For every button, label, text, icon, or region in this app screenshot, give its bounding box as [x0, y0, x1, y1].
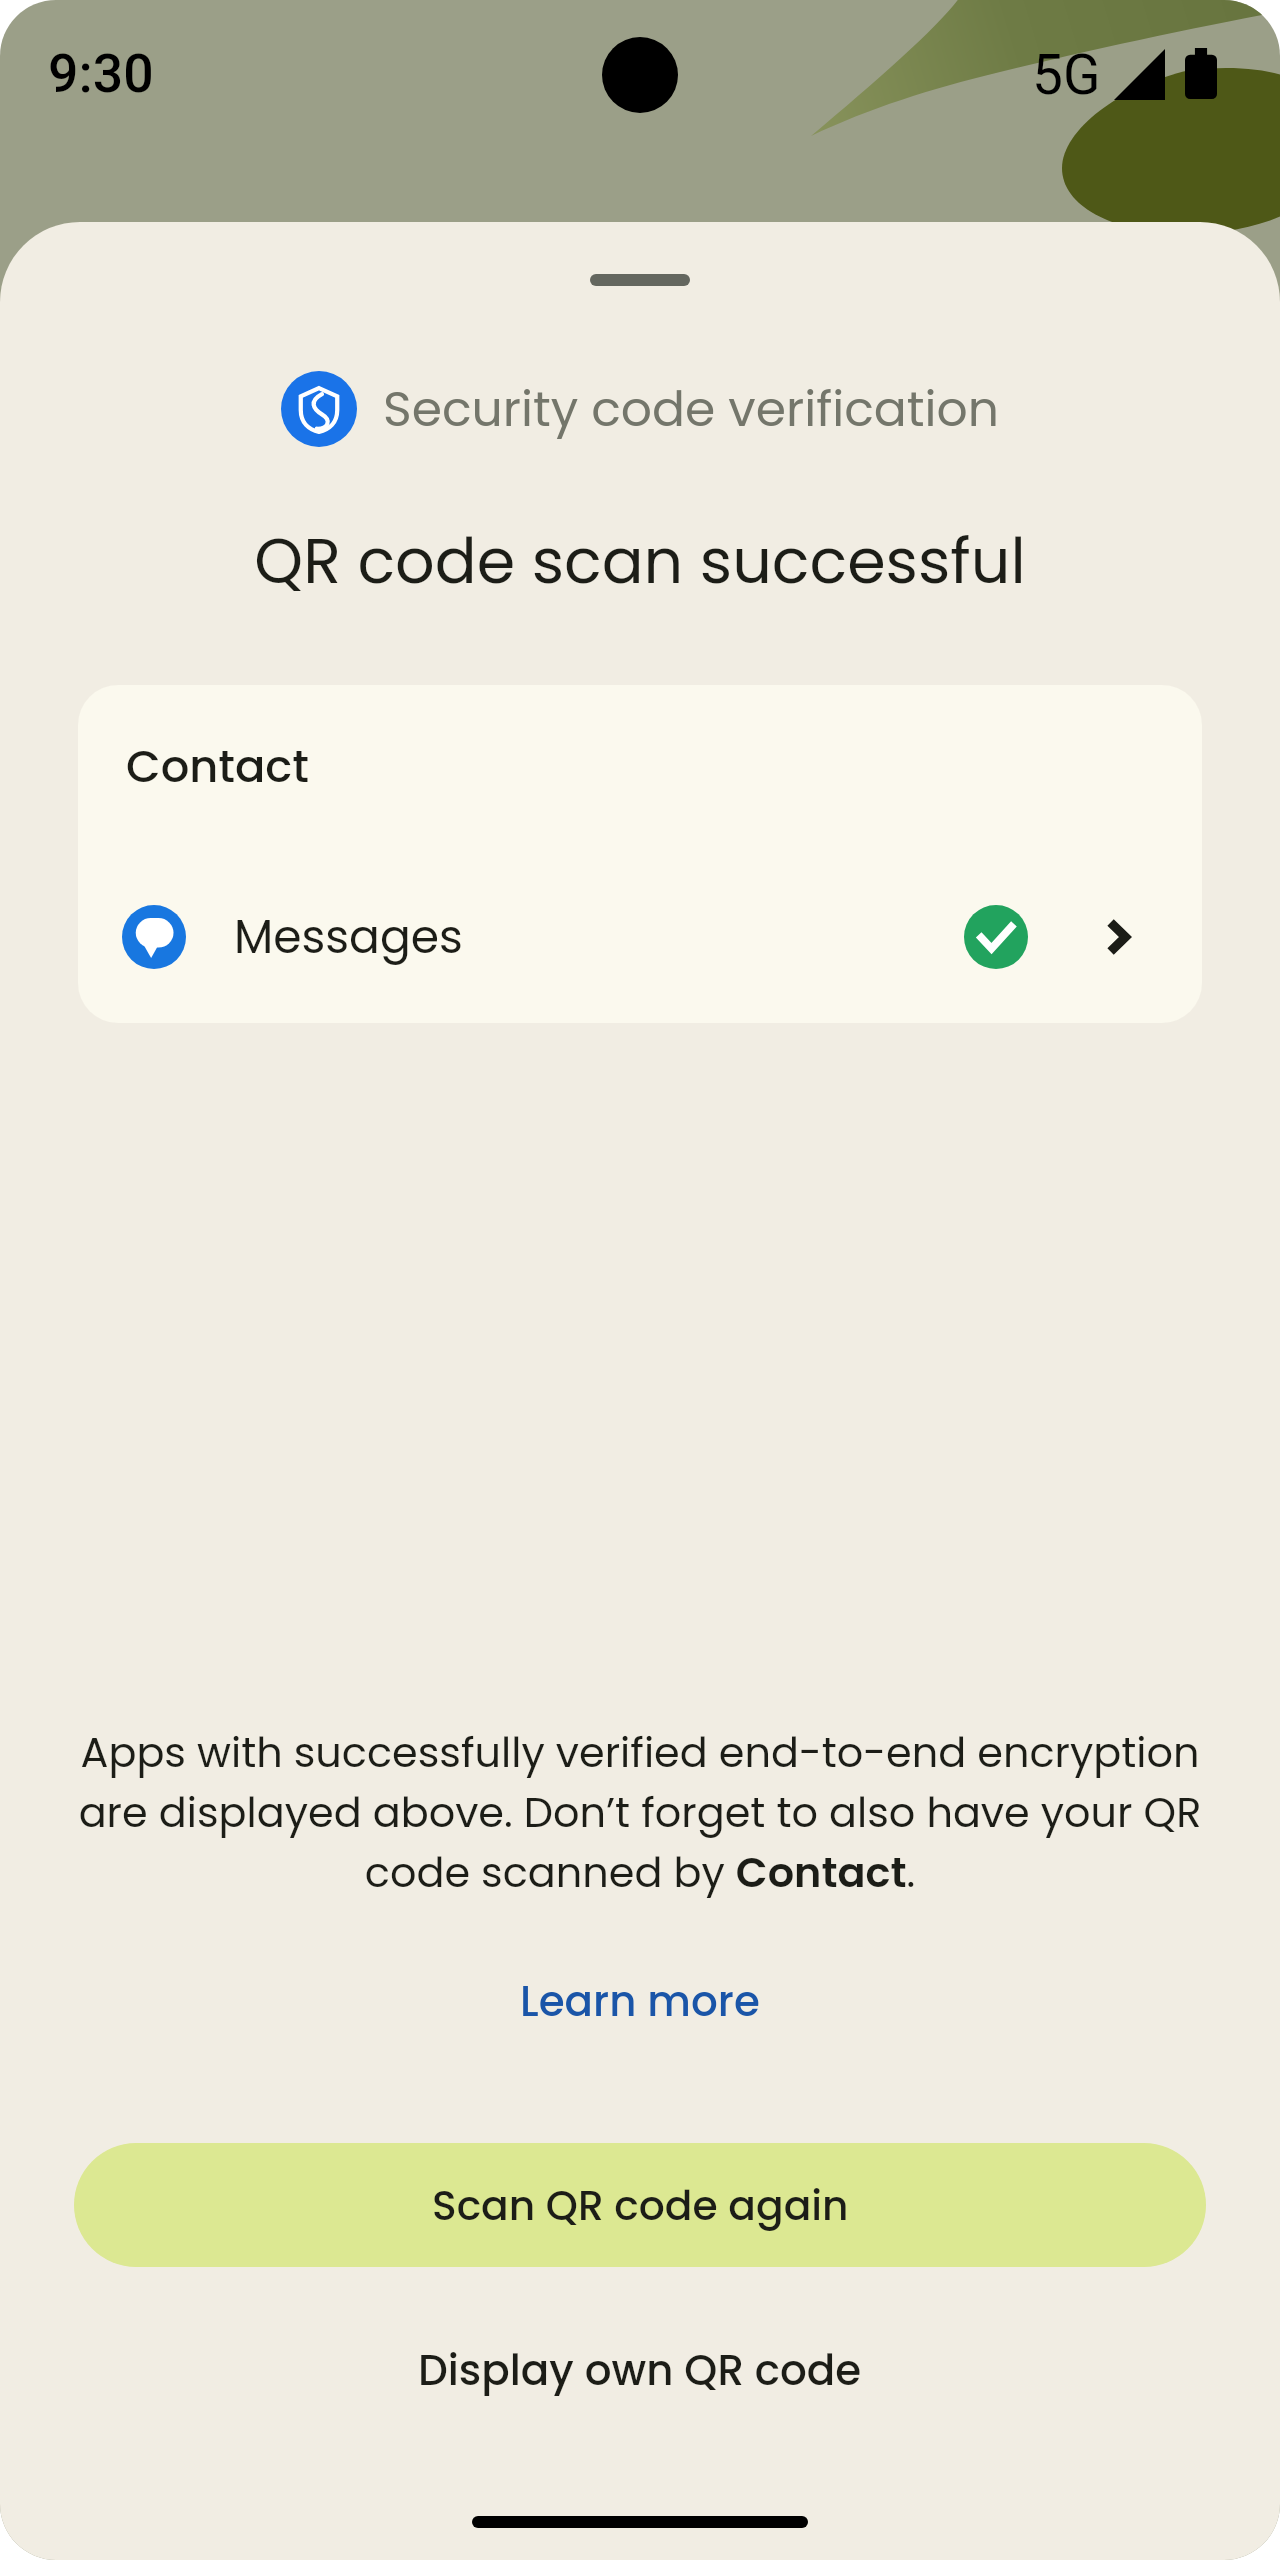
staticText: Apps with successfully verified end-to-e… [64, 1724, 1216, 1901]
staticText: Messages [234, 905, 463, 969]
staticText: QR code scan successful [0, 518, 1280, 605]
button[interactable]: Messages [78, 851, 1202, 1023]
staticText: Scan QR code again [432, 2177, 849, 2234]
button[interactable]: Display own QR code [74, 2308, 1206, 2432]
staticText: 5G [1032, 43, 1101, 107]
button[interactable]: Scan QR code again [74, 2143, 1206, 2267]
staticText: 9:30 [48, 42, 154, 105]
staticText: Display own QR code [418, 2341, 862, 2400]
button[interactable]: Learn more [484, 1962, 796, 2041]
staticText: Security code verification [383, 375, 1000, 443]
other: Security code verification [281, 371, 357, 447]
staticText: Contact [126, 735, 309, 798]
other: Open [1106, 918, 1130, 956]
